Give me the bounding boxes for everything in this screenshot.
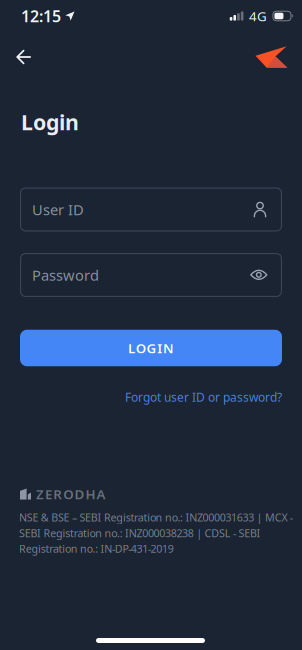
button[interactable]: Forgot user ID or password? bbox=[125, 389, 282, 405]
staticText: 12:15 bbox=[21, 5, 61, 27]
button[interactable]: Back bbox=[10, 43, 37, 71]
staticText: Login bbox=[21, 108, 79, 136]
staticText: SEBI Registration no.: INZ000038238 | CD… bbox=[19, 526, 261, 540]
staticText: Forgot user ID or password? bbox=[125, 389, 282, 405]
staticText: LOGIN bbox=[128, 339, 174, 357]
staticText: Registration no.: IN-DP-431-2019 bbox=[19, 542, 174, 556]
staticText: ZERODHA bbox=[36, 485, 106, 503]
button[interactable]: Show password bbox=[250, 269, 268, 281]
staticText: NSE & BSE – SEBI Registration no.: INZ00… bbox=[19, 510, 293, 524]
staticText: User ID bbox=[32, 200, 84, 219]
button[interactable]: LOGIN bbox=[20, 330, 282, 366]
staticText: 4G bbox=[249, 7, 267, 25]
staticText: Password bbox=[32, 265, 99, 285]
